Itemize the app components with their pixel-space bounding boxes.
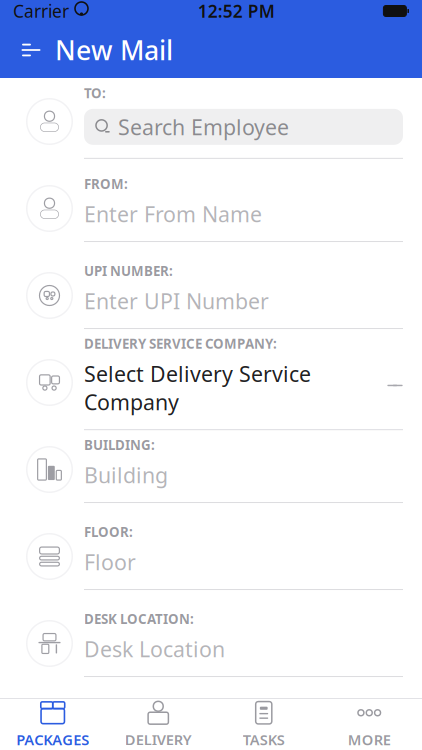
button[interactable]: DELIVERY SERVICE COMPANY: <box>0 339 422 426</box>
staticText: FLOOR: <box>84 523 133 541</box>
staticText: Desk Location <box>84 635 225 663</box>
staticText: BUILDING: <box>84 436 155 454</box>
button[interactable]: FLOOR: <box>0 513 422 600</box>
staticText: Enter From Name <box>84 200 262 228</box>
staticText: DELIVERY SERVICE COMPANY: <box>84 335 277 352</box>
button[interactable]: MORE <box>316 698 422 750</box>
staticText: PACKAGES <box>16 730 89 749</box>
staticText: MORE <box>348 730 391 749</box>
button[interactable]: BUILDING: <box>0 426 422 513</box>
staticText: FROM: <box>84 175 128 193</box>
staticText: Select Delivery Service Company <box>84 359 311 416</box>
staticText: TASKS <box>243 730 285 749</box>
button[interactable]: UPI NUMBER: <box>0 252 422 339</box>
staticText: Carrier <box>13 0 69 22</box>
button[interactable]: DELIVERY <box>105 698 211 750</box>
button[interactable]: PACKAGES <box>0 698 105 750</box>
staticText: TO: <box>84 84 106 102</box>
button[interactable]: DESK LOCATION: <box>0 600 422 687</box>
staticText: UPI NUMBER: <box>84 262 173 280</box>
button[interactable]: Back <box>9 28 53 72</box>
staticText: Floor <box>84 548 136 576</box>
staticText: Building <box>84 461 168 489</box>
staticText: 12:52 PM <box>198 0 275 22</box>
staticText: Search Employee <box>118 113 289 141</box>
staticText: New Mail <box>55 32 173 68</box>
button[interactable]: FROM: <box>0 165 422 252</box>
staticText: DESK LOCATION: <box>84 610 194 628</box>
button[interactable]: TASKS <box>211 698 316 750</box>
staticText: Enter UPI Number <box>84 287 269 315</box>
staticText: DELIVERY <box>125 730 192 749</box>
button[interactable]: TO: <box>0 78 422 165</box>
